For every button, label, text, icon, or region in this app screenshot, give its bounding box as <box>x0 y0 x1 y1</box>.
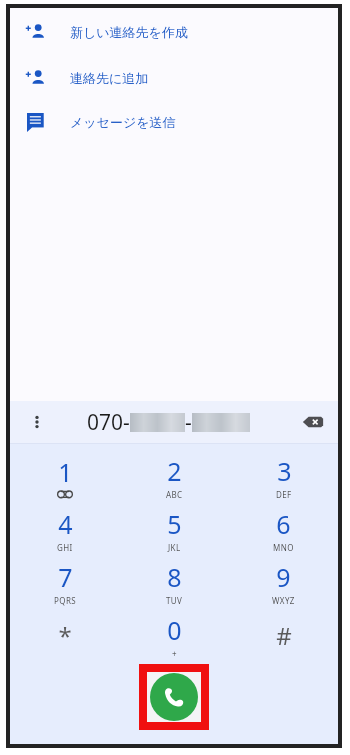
staticText: ABC <box>166 489 183 500</box>
button[interactable]: メッセージを送信 <box>10 100 338 144</box>
button[interactable]: 0 <box>120 609 229 662</box>
button[interactable]: 5 <box>120 503 229 556</box>
staticText: 070- <box>87 408 130 437</box>
staticText: 3 <box>277 454 292 488</box>
staticText: 6 <box>276 507 291 541</box>
button[interactable]: 新しい連絡先を作成 <box>10 8 338 54</box>
button[interactable]: 9 <box>229 556 338 609</box>
button[interactable]: Backspace <box>298 407 328 437</box>
staticText: DEF <box>276 489 292 500</box>
button[interactable]: 8 <box>120 556 229 609</box>
staticText: - <box>185 408 192 437</box>
staticText: 8 <box>167 560 182 594</box>
staticText: WXYZ <box>272 595 295 606</box>
staticText: 4 <box>58 507 73 541</box>
staticText: GHI <box>57 542 73 553</box>
button[interactable]: 連絡先に追加 <box>10 54 338 100</box>
button[interactable]: More options <box>24 409 50 435</box>
button[interactable]: * <box>10 609 120 662</box>
staticText: PQRS <box>54 595 77 606</box>
staticText: TUV <box>166 595 183 606</box>
button[interactable]: 7 <box>10 556 120 609</box>
staticText: 2 <box>167 454 182 488</box>
staticText: JKL <box>168 542 181 553</box>
staticText: メッセージを送信 <box>70 114 176 130</box>
button[interactable]: 2 <box>120 450 229 503</box>
staticText: 連絡先に追加 <box>70 70 149 86</box>
staticText: MNO <box>273 542 294 553</box>
button[interactable]: 4 <box>10 503 120 556</box>
staticText: 5 <box>167 507 182 541</box>
button[interactable]: 1 <box>10 450 120 503</box>
staticText: 新しい連絡先を作成 <box>70 24 188 40</box>
staticText: # <box>276 619 292 652</box>
button[interactable]: # <box>229 609 338 662</box>
staticText: 1 <box>58 455 73 489</box>
button[interactable]: 6 <box>229 503 338 556</box>
staticText: * <box>58 619 72 652</box>
staticText: + <box>172 648 177 659</box>
button[interactable]: Call <box>150 673 198 721</box>
staticText: 7 <box>58 560 73 594</box>
staticText: 9 <box>276 560 291 594</box>
staticText: 0 <box>167 613 182 647</box>
button[interactable]: 3 <box>229 450 338 503</box>
